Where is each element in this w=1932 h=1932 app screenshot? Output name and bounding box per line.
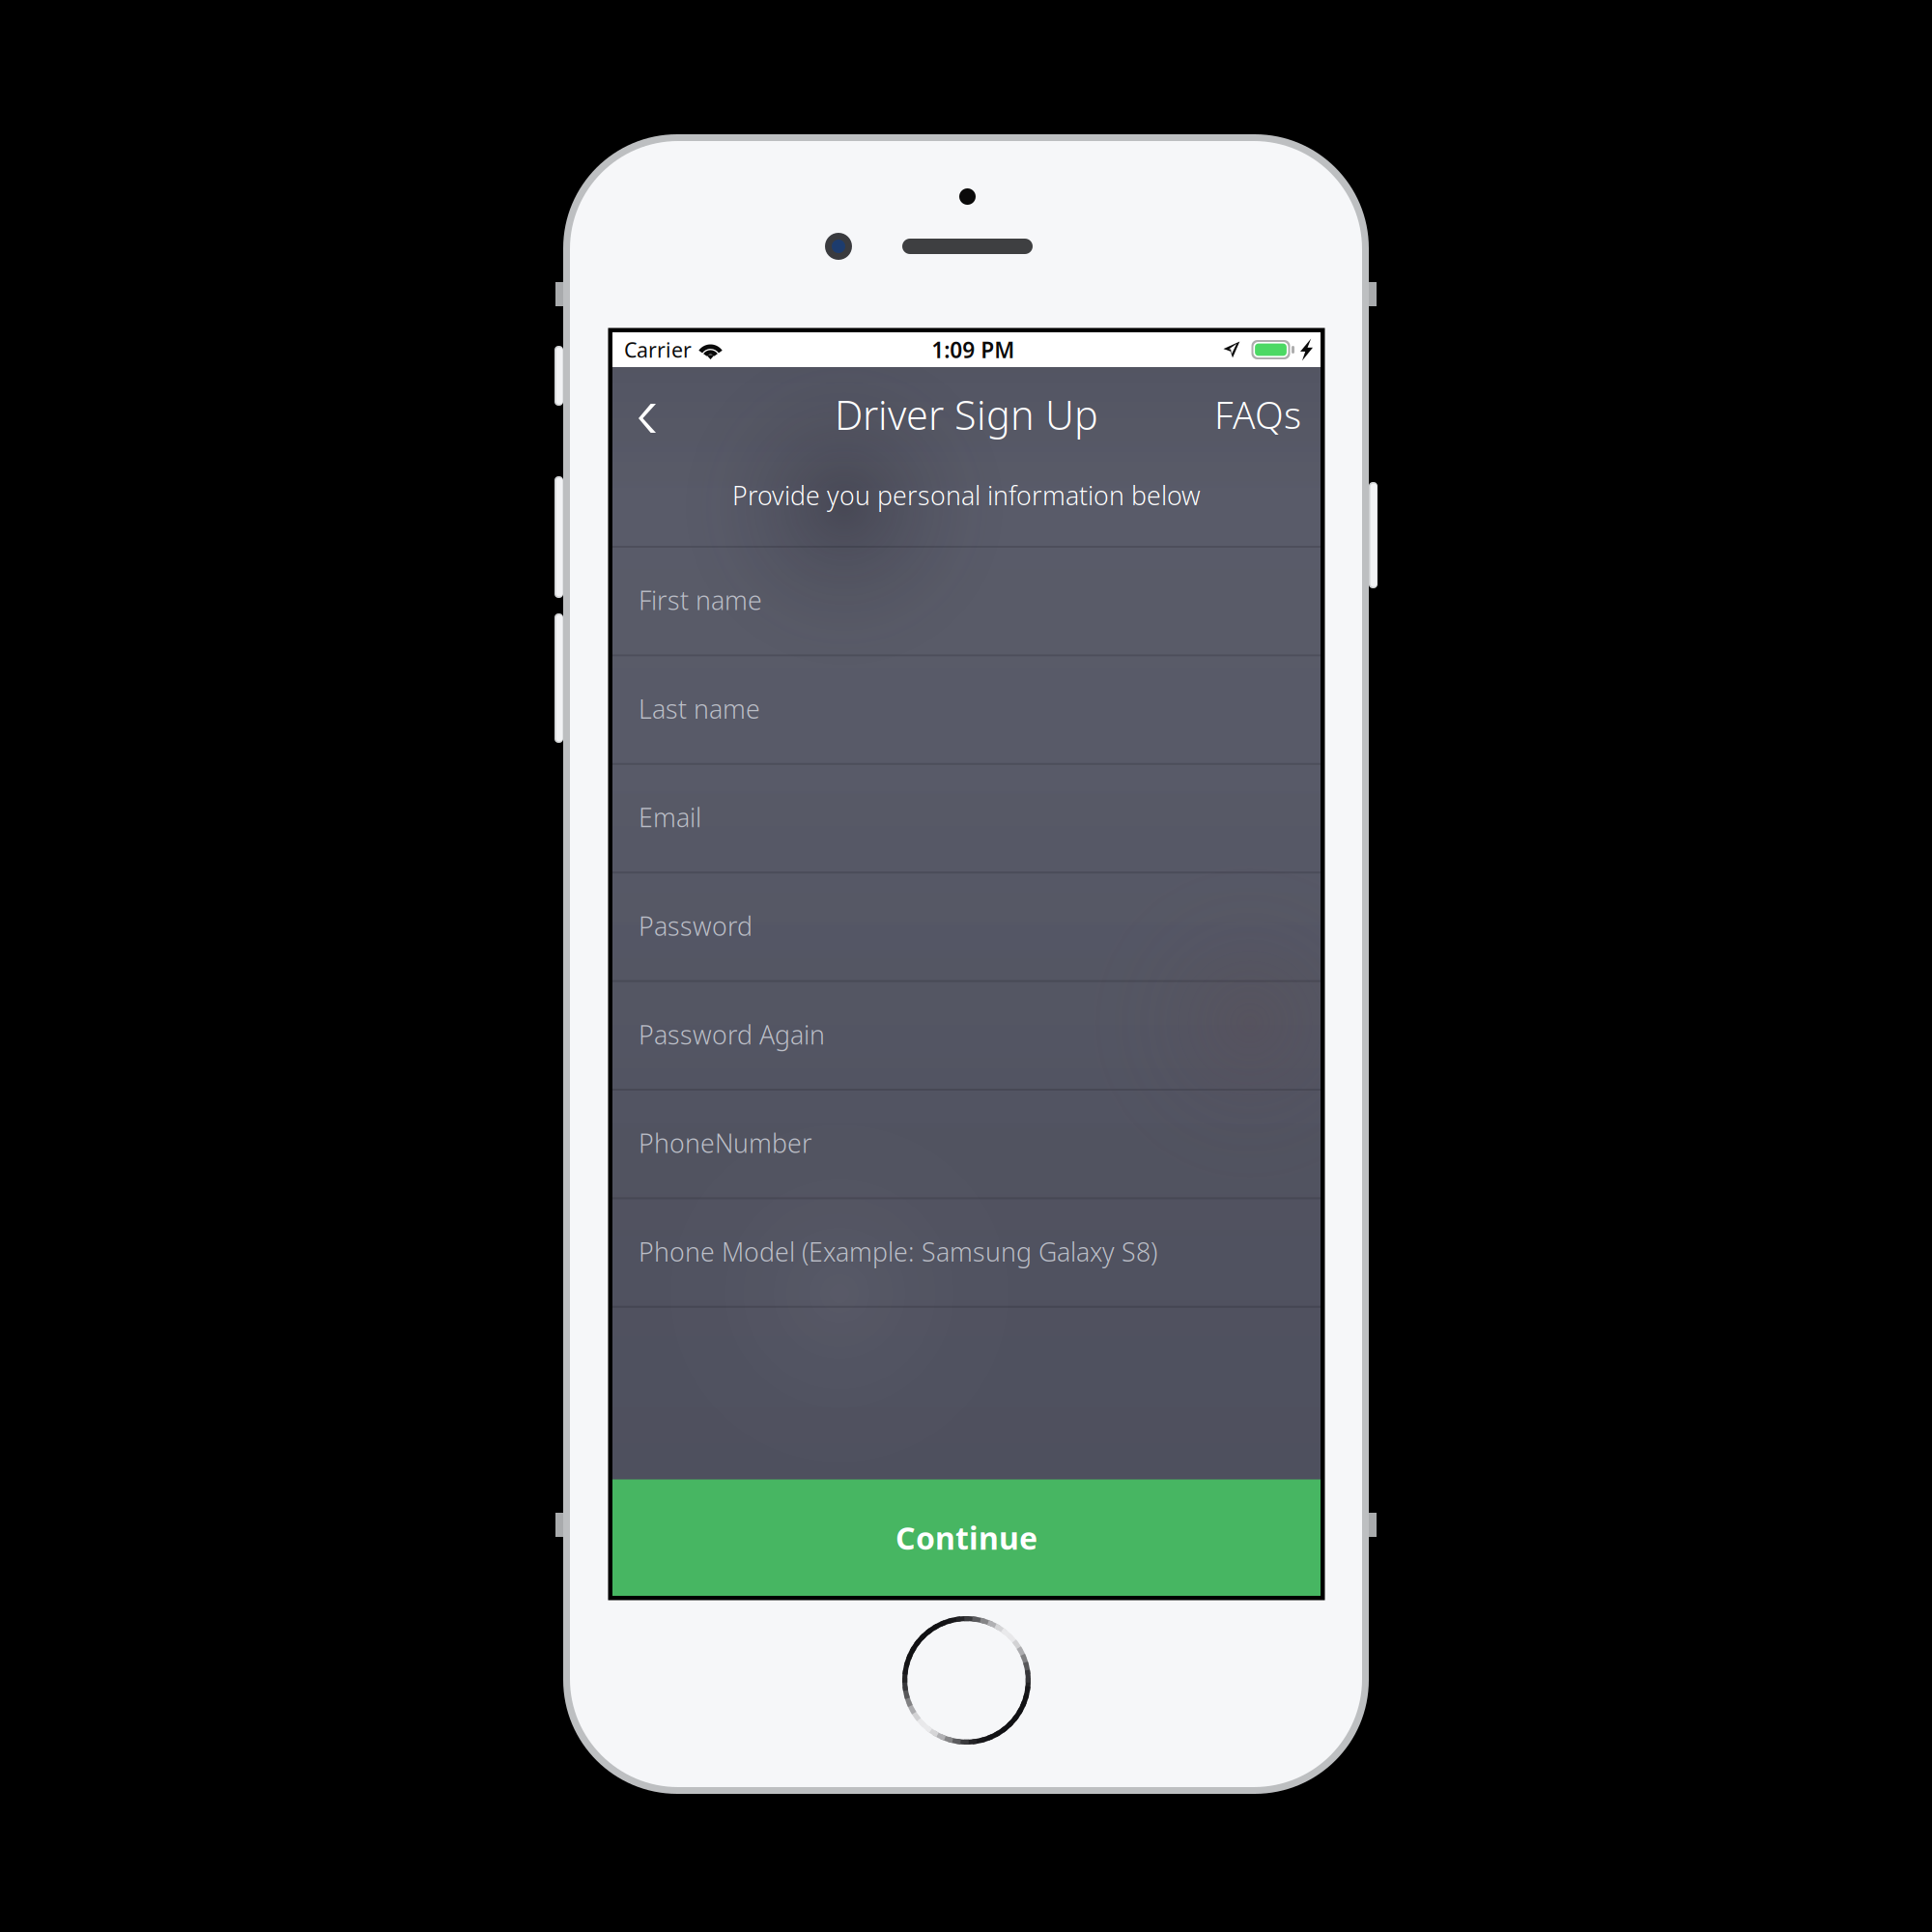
button[interactable]: Continue	[612, 1479, 1321, 1596]
staticText: FAQs	[1214, 390, 1301, 439]
button[interactable]: PhoneNumber	[612, 1089, 1321, 1197]
button[interactable]: Password	[612, 872, 1321, 980]
staticText: PhoneNumber	[639, 1126, 812, 1160]
staticText: Continue	[895, 1517, 1037, 1558]
staticText: Password Again	[639, 1017, 825, 1051]
button[interactable]: Back	[612, 367, 686, 462]
button[interactable]: Password Again	[612, 980, 1321, 1089]
button[interactable]: Phone Model (Example: Samsung Galaxy S8)	[612, 1197, 1321, 1306]
button[interactable]: Email	[612, 763, 1321, 872]
staticText: Email	[639, 800, 701, 834]
staticText: Driver Sign Up	[835, 388, 1098, 441]
button[interactable]: First name	[612, 546, 1321, 654]
staticText: Last name	[639, 692, 760, 726]
button[interactable]: FAQs	[1214, 367, 1321, 462]
staticText: First name	[639, 583, 762, 617]
staticText: Password	[639, 909, 753, 943]
staticText: 1:09 PM	[931, 335, 1014, 364]
staticText: Phone Model (Example: Samsung Galaxy S8)	[639, 1234, 1157, 1269]
staticText: Provide you personal information below	[732, 478, 1201, 512]
button[interactable]: Last name	[612, 654, 1321, 763]
staticText: Carrier	[624, 336, 692, 363]
